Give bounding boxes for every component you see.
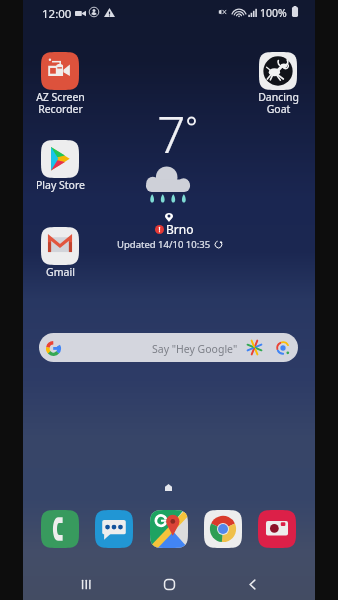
staticText: 100%	[260, 6, 287, 20]
button[interactable]: Play Store	[26, 140, 94, 192]
button[interactable]: Back	[232, 568, 272, 600]
button[interactable]: Dancing Goat	[244, 52, 312, 116]
staticText: AZ Screen Recorder	[36, 90, 85, 116]
button[interactable]: Home	[149, 568, 189, 600]
button[interactable]: AZ Screen Recorder	[26, 52, 94, 116]
button[interactable]: Gmail	[26, 227, 94, 279]
button[interactable]: Maps	[150, 510, 188, 548]
staticText: Say "Hey Google"	[152, 342, 238, 356]
button[interactable]: Recents	[66, 568, 106, 600]
button[interactable]: Say "Hey Google"	[39, 333, 298, 362]
button[interactable]: Chrome	[204, 510, 242, 548]
staticText: Dancing Goat	[258, 90, 299, 116]
button[interactable]: Phone	[41, 510, 79, 548]
staticText: Brno	[166, 221, 194, 237]
staticText: Updated 14/10 10:35	[117, 238, 211, 251]
button[interactable]: Messages	[95, 510, 133, 548]
button[interactable]: 7	[100, 108, 236, 258]
staticText: Play Store	[36, 178, 85, 192]
staticText: 7	[157, 100, 186, 168]
staticText: 12:00	[42, 6, 72, 22]
button[interactable]: Camera	[258, 510, 296, 548]
staticText: Gmail	[46, 265, 75, 279]
